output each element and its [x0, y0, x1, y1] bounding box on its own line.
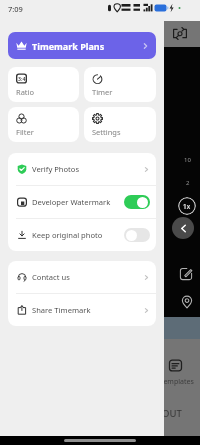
button[interactable]: Timemark Plans	[8, 32, 156, 59]
button[interactable]: Collapse panel	[172, 217, 194, 239]
staticText: OUT	[162, 407, 182, 420]
staticText: Contact us	[32, 272, 70, 282]
staticText: Timer	[92, 87, 113, 97]
button[interactable]: Contact us	[8, 261, 156, 293]
button[interactable]: Edit	[179, 267, 193, 281]
staticText: Share Timemark	[32, 305, 91, 315]
staticText: 10	[184, 156, 191, 164]
button[interactable]: Templates	[168, 358, 184, 373]
staticText: Filter	[16, 127, 34, 137]
button[interactable]: Share Timemark	[8, 294, 156, 326]
button[interactable]: Toggle off	[124, 228, 150, 242]
staticText: 2	[186, 179, 190, 187]
staticText: Ratio	[16, 87, 35, 97]
button[interactable]: Toggle on	[124, 195, 150, 209]
staticText: 7:09	[8, 4, 23, 14]
button[interactable]: Location	[180, 295, 194, 309]
button[interactable]: 10	[182, 155, 193, 164]
staticText: 3:4	[18, 75, 26, 82]
staticText: Verify Photos	[32, 164, 80, 174]
staticText: Timemark Plans	[32, 40, 105, 52]
staticText: 1x	[183, 202, 191, 211]
button[interactable]: Switch camera	[172, 27, 188, 40]
staticText: Keep original photo	[32, 230, 103, 240]
staticText: Developer Watermark	[32, 197, 111, 207]
staticText: Settings	[92, 127, 121, 137]
button[interactable]: Developer Watermark	[8, 186, 156, 218]
staticText: Templates	[160, 377, 194, 387]
button[interactable]: Settings	[84, 107, 156, 142]
button[interactable]: 3:4	[8, 67, 79, 102]
button[interactable]: Filter	[8, 107, 79, 142]
button[interactable]: 1x	[178, 197, 196, 215]
button[interactable]: 2	[182, 178, 193, 187]
button[interactable]: Timer	[84, 67, 156, 102]
button[interactable]: Verify Photos	[8, 153, 156, 185]
button[interactable]: Keep original photo	[8, 219, 156, 251]
